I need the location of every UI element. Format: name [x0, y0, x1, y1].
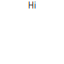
staticText: Hi	[28, 0, 36, 11]
